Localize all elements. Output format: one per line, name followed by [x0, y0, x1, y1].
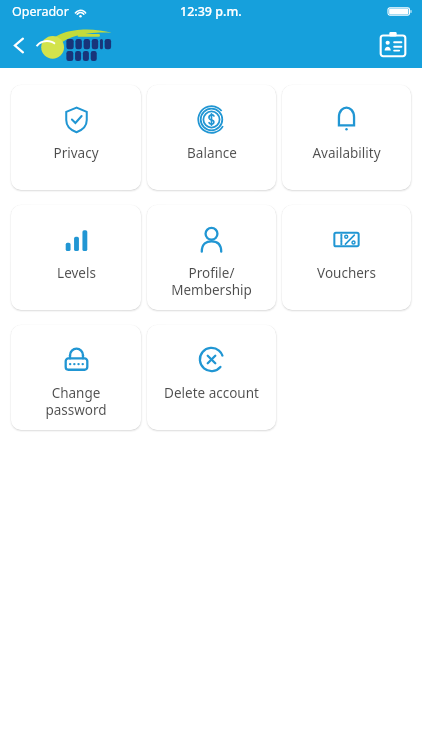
button[interactable]: Privacy: [11, 85, 141, 190]
staticText: Privacy: [53, 144, 99, 162]
button[interactable]: Availability: [282, 85, 411, 190]
staticText: Profile/ Membership: [171, 264, 252, 299]
button[interactable]: Levels: [11, 205, 141, 310]
button[interactable]: Membership card: [376, 28, 410, 62]
button[interactable]: Balance: [147, 85, 276, 190]
button[interactable]: Profile/ Membership: [147, 205, 276, 310]
staticText: Vouchers: [317, 264, 376, 282]
button[interactable]: Back: [0, 26, 38, 64]
staticText: Balance: [187, 144, 237, 162]
staticText: Availability: [312, 144, 381, 162]
staticText: 12:39 p.m.: [180, 3, 242, 20]
button[interactable]: Change password: [11, 325, 141, 430]
staticText: Operador: [12, 3, 69, 20]
staticText: Delete account: [164, 384, 259, 402]
staticText: Levels: [57, 264, 96, 282]
button[interactable]: Vouchers: [282, 205, 411, 310]
button[interactable]: Delete account: [147, 325, 276, 430]
staticText: Change password: [45, 384, 107, 419]
